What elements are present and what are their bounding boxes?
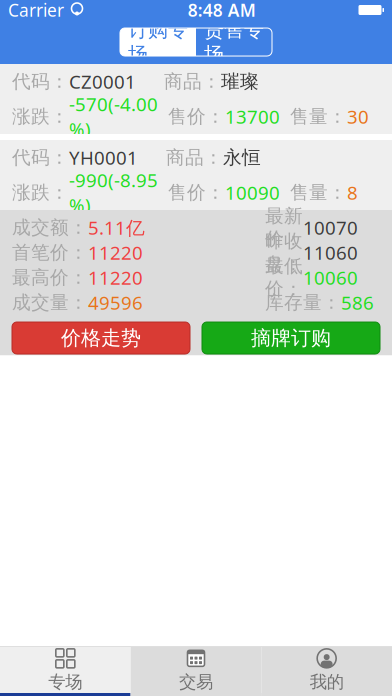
staticText: CZ0001: [69, 69, 136, 94]
staticText: 代码：: [12, 146, 69, 169]
button[interactable]: 订购专场: [120, 28, 196, 56]
staticText: 代码：: [12, 70, 69, 93]
staticText: 售价：: [168, 105, 225, 128]
staticText: 价格走势: [61, 326, 141, 350]
staticText: 5.11亿: [88, 215, 145, 240]
staticText: 永恒: [223, 146, 261, 169]
staticText: 商品：: [164, 70, 221, 93]
staticText: 专场: [48, 671, 82, 693]
staticText: -570(-4.00%): [69, 92, 158, 141]
button[interactable]: 我的: [261, 647, 392, 696]
staticText: 璀璨: [221, 70, 259, 93]
staticText: 售价：: [168, 181, 225, 204]
staticText: 成交量：: [12, 291, 88, 314]
staticText: 11220: [88, 240, 143, 265]
button[interactable]: 摘牌订购: [202, 322, 380, 354]
staticText: 10060: [303, 265, 358, 290]
staticText: 30: [347, 104, 369, 129]
staticText: 最高价：: [12, 266, 88, 289]
staticText: -990(-8.95%): [69, 168, 158, 217]
staticText: 586: [341, 290, 374, 315]
button[interactable]: 价格走势: [12, 322, 190, 354]
staticText: 售量：: [290, 181, 347, 204]
staticText: 交易: [179, 671, 213, 693]
staticText: 贷售专场: [204, 17, 264, 66]
staticText: 商品：: [166, 146, 223, 169]
button[interactable]: 专场: [0, 647, 131, 696]
button[interactable]: 交易: [131, 647, 261, 696]
staticText: 11060: [303, 240, 358, 265]
staticText: 13700: [225, 104, 280, 129]
staticText: 8: [347, 180, 358, 205]
staticText: 摘牌订购: [251, 326, 331, 350]
staticText: 涨跌：: [12, 181, 69, 204]
staticText: 最新价：: [265, 205, 303, 250]
staticText: 成交额：: [12, 216, 88, 239]
staticText: 11220: [88, 265, 143, 290]
staticText: 49596: [88, 290, 143, 315]
staticText: 昨收盘：: [265, 230, 303, 275]
staticText: YH0001: [69, 145, 138, 170]
staticText: 10090: [225, 180, 280, 205]
staticText: 我的: [310, 671, 344, 693]
staticText: 库存量：: [265, 291, 341, 314]
staticText: 订购专场: [128, 17, 188, 66]
staticText: Carrier: [8, 0, 64, 21]
staticText: 首笔价：: [12, 241, 88, 264]
staticText: 8:48 AM: [188, 0, 256, 21]
staticText: 售量：: [290, 105, 347, 128]
button[interactable]: 贷售专场: [196, 28, 272, 56]
staticText: 10070: [303, 215, 358, 240]
staticText: 最低价：: [265, 255, 303, 300]
staticText: 涨跌：: [12, 105, 69, 128]
